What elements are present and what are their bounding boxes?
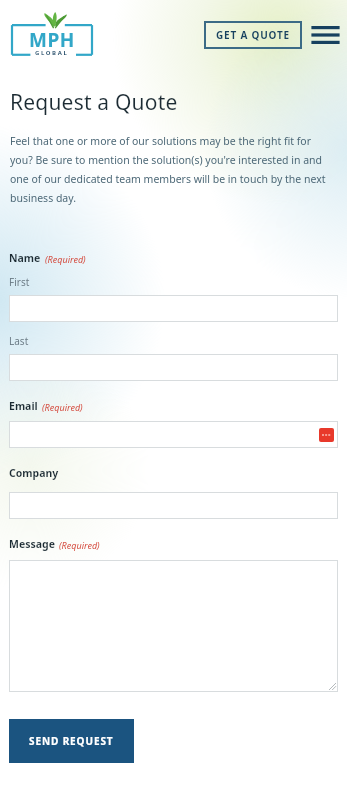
button[interactable]: Text input field (9, 492, 338, 519)
staticText: Last (9, 334, 29, 348)
button[interactable]: Text input field (9, 354, 338, 381)
staticText: (Required) (45, 253, 86, 265)
staticText: GLOBAL (35, 49, 69, 57)
staticText: Company (9, 466, 59, 480)
staticText: GET A QUOTE (216, 28, 290, 42)
staticText: Feel that one or more of our solutions m… (10, 134, 334, 205)
staticText: MPH (29, 27, 75, 53)
staticText: Request a Quote (10, 88, 178, 117)
button[interactable]: Text input field (9, 560, 338, 692)
staticText: SEND REQUEST (29, 734, 114, 748)
staticText: First (9, 275, 30, 289)
button[interactable]: SEND REQUEST (9, 719, 134, 763)
button[interactable]: Text input field (9, 295, 338, 322)
button[interactable]: GET A QUOTE (204, 21, 302, 49)
staticText: Email (9, 399, 38, 413)
button[interactable]: Text input field (9, 421, 338, 448)
staticText: Message (9, 537, 55, 551)
staticText: (Required) (42, 401, 83, 413)
staticText: (Required) (59, 539, 100, 551)
staticText: Name (9, 251, 41, 265)
button[interactable]: MPH Global home (12, 12, 92, 58)
button[interactable]: Open menu (312, 23, 338, 47)
